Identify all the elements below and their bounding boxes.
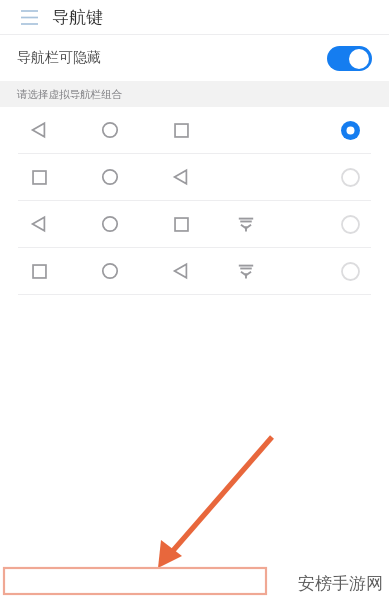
button[interactable]: Menu <box>14 2 44 32</box>
staticText: 导航键 <box>52 7 103 28</box>
button[interactable]: Navigation layout option <box>0 154 389 200</box>
staticText: 安榜手游网 <box>298 573 383 594</box>
button[interactable]: Navigation bar hideable toggle <box>327 46 372 71</box>
button[interactable]: Navigation layout option <box>0 107 389 153</box>
staticText: 导航栏可隐藏 <box>17 49 101 67</box>
button[interactable]: Navigation layout option <box>0 201 389 247</box>
staticText: 请选择虚拟导航栏组合 <box>17 88 122 101</box>
button[interactable]: 导航栏可隐藏 <box>0 35 389 81</box>
button[interactable]: Navigation layout option <box>0 248 389 294</box>
